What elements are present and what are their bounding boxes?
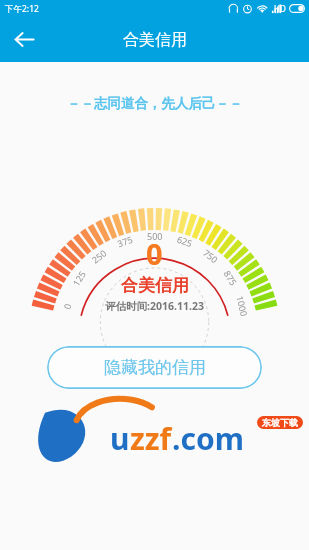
- staticText: 500: [147, 230, 163, 242]
- staticText: u: [110, 418, 130, 459]
- staticText: 隐藏我的信用: [104, 357, 206, 378]
- staticText: 1000: [234, 294, 251, 318]
- staticText: HD: [274, 3, 286, 14]
- staticText: 合美信用: [121, 275, 189, 296]
- staticText: 评估时间:2016.11.23: [105, 299, 204, 313]
- staticText: 250: [89, 246, 109, 266]
- staticText: 0: [146, 234, 163, 273]
- staticText: 625: [175, 233, 195, 249]
- staticText: zzf: [130, 418, 172, 459]
- staticText: 东坡下载: [262, 417, 298, 428]
- staticText: 875: [222, 268, 240, 288]
- staticText: －－志同道合，先人后己－－: [0, 95, 309, 112]
- staticText: 下午2:12: [5, 3, 39, 15]
- staticText: 合美信用: [123, 30, 187, 50]
- staticText: 0: [60, 302, 73, 310]
- staticText: .com: [172, 418, 244, 459]
- staticText: 750: [201, 246, 221, 266]
- button[interactable]: Back: [0, 17, 48, 62]
- staticText: 375: [115, 233, 135, 249]
- button[interactable]: 隐藏我的信用: [47, 346, 262, 389]
- staticText: 125: [70, 268, 88, 288]
